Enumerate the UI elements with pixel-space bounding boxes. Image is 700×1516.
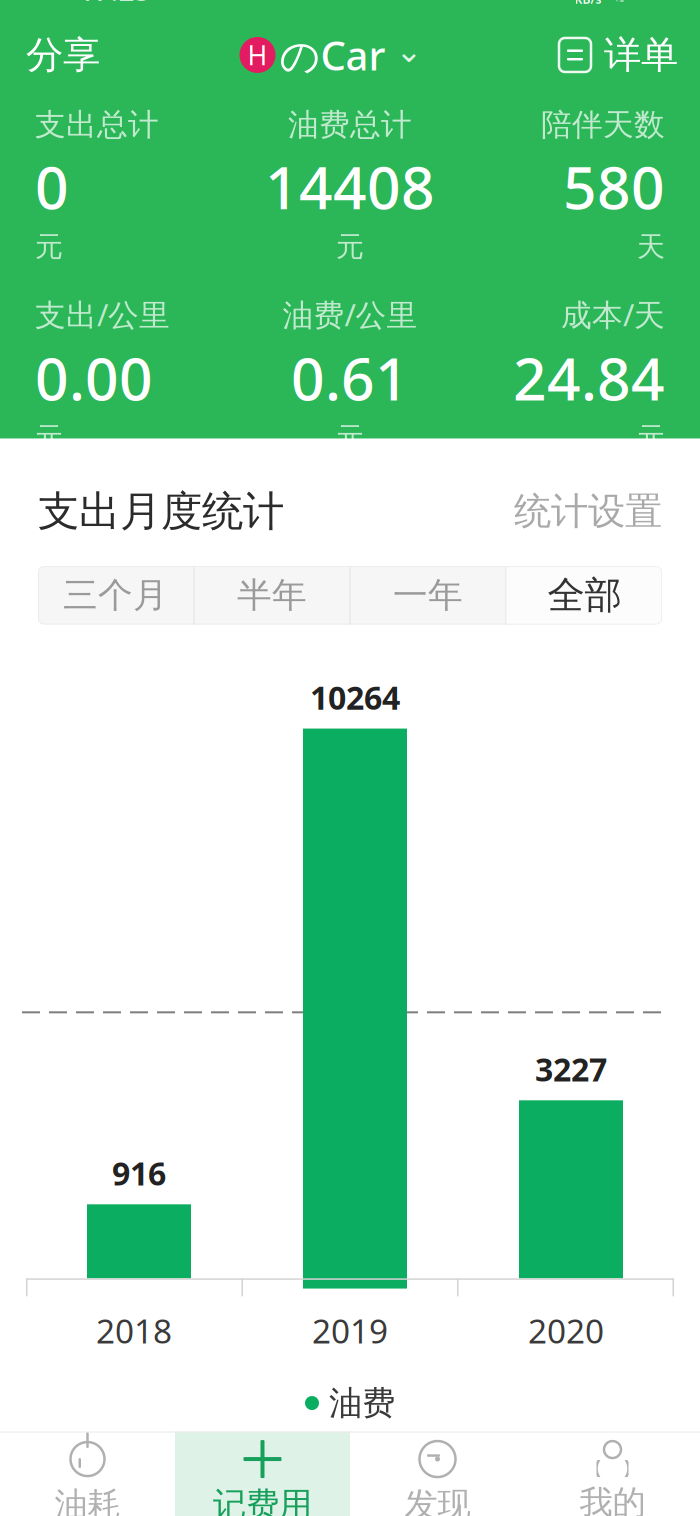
staticText: 元 (336, 229, 364, 264)
button[interactable]: 全部 (506, 566, 662, 624)
staticText: 发现 (404, 1484, 470, 1516)
staticText: 3227 (535, 1048, 607, 1090)
staticText: 支出月度统计 (38, 486, 284, 537)
button[interactable]: H (229, 20, 432, 89)
button[interactable]: 油耗 (0, 1431, 175, 1516)
staticText: 详单 (604, 32, 678, 78)
staticText: 一年 (393, 574, 463, 617)
button[interactable]: 半年 (194, 566, 349, 624)
staticText: 我的 (579, 1482, 645, 1516)
staticText: ⌄ (395, 33, 422, 69)
staticText: 支出/公里 (35, 294, 170, 335)
button[interactable]: 详单 (536, 22, 700, 88)
staticText: 油费 (329, 1383, 395, 1423)
button[interactable]: 一年 (350, 566, 505, 624)
staticText: 油耗 (54, 1484, 120, 1516)
staticText: 2019 (312, 1308, 388, 1353)
staticText: 2020 (528, 1308, 604, 1353)
staticText: 天 (637, 229, 665, 264)
button[interactable]: 记费用 (175, 1431, 350, 1516)
staticText: 分享 (26, 32, 100, 78)
staticText: 元 (637, 421, 665, 455)
staticText: 油费/公里 (282, 294, 417, 335)
staticText: 元 (336, 421, 364, 455)
button[interactable]: 发现 (350, 1431, 525, 1516)
staticText: 记费用 (213, 1484, 312, 1516)
staticText: KB/s (574, 0, 601, 7)
staticText: 支出总计 (35, 106, 159, 144)
staticText: 24.84 (513, 339, 665, 417)
staticText: 0.61 (291, 339, 409, 417)
staticText: 0 (35, 148, 69, 225)
staticText: 成本/天 (561, 294, 665, 335)
button[interactable]: 统计设置 (494, 482, 662, 540)
staticText: 580 (563, 148, 665, 225)
staticText: 陪伴天数 (541, 106, 665, 144)
staticText: 三个月 (63, 574, 168, 617)
staticText: H (247, 37, 267, 73)
staticText: 14408 (265, 148, 435, 225)
staticText: 元 (35, 421, 63, 455)
staticText: 元 (35, 229, 63, 264)
staticText: 半年 (237, 574, 307, 617)
staticText: 0.00 (35, 339, 153, 417)
button[interactable]: 分享 (0, 20, 126, 90)
staticText: 2018 (96, 1308, 172, 1353)
staticText: 全部 (547, 572, 621, 618)
staticText: のCar (279, 28, 385, 81)
staticText: 油费总计 (288, 106, 412, 144)
staticText: 916 (112, 1152, 166, 1194)
staticText: 统计设置 (514, 488, 662, 534)
button[interactable]: 三个月 (37, 566, 193, 624)
button[interactable]: 我的 (525, 1431, 700, 1516)
staticText: ▾▴ (614, 0, 624, 4)
staticText: 17:23 (78, 0, 150, 9)
staticText: 10264 (310, 676, 400, 719)
